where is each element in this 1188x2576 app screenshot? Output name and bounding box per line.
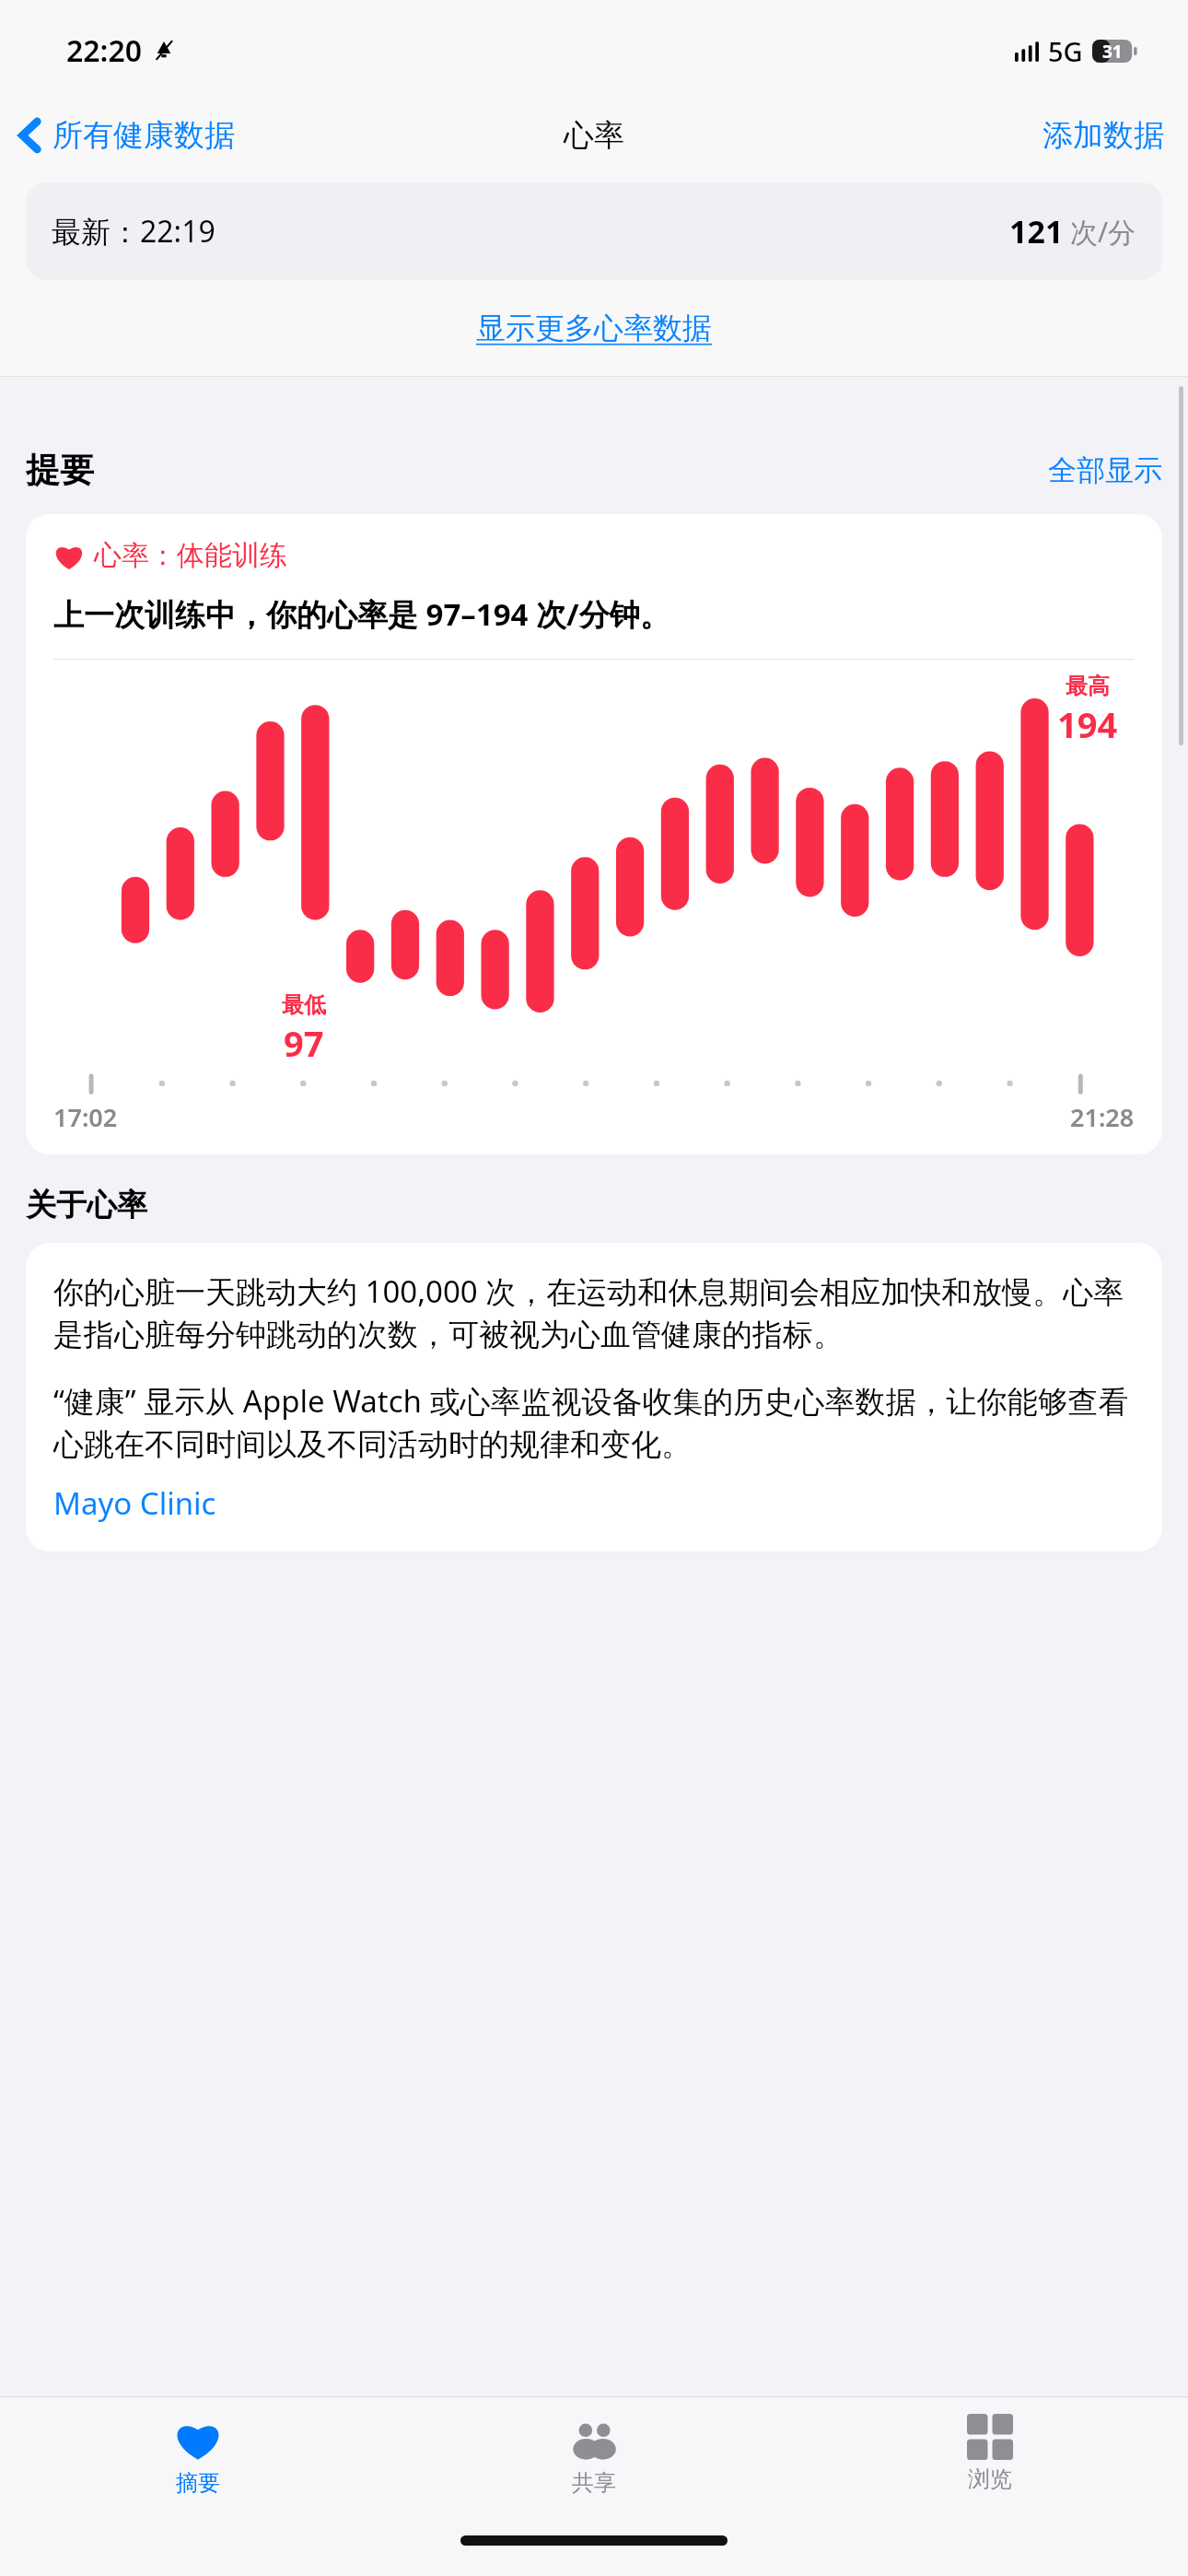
- staticText: 最低: [282, 991, 326, 1019]
- staticText: 关于心率: [26, 1186, 147, 1224]
- button[interactable]: Mayo Clinic: [53, 1482, 216, 1524]
- staticText: 次/分: [1070, 213, 1136, 251]
- staticText: “健康” 显示从 Apple Watch 或心率监视设备收集的历史心率数据，让你…: [53, 1380, 1135, 1464]
- button[interactable]: 显示更多心率数据: [0, 280, 1188, 376]
- staticText: 心率：体能训练: [94, 538, 287, 573]
- staticText: 心率: [564, 116, 624, 155]
- staticText: 最新：22:19: [52, 211, 215, 252]
- staticText: 你的心脏一天跳动大约 100,000 次，在运动和休息期间会相应加快和放慢。心率…: [53, 1270, 1135, 1354]
- staticText: 浏览: [968, 2465, 1012, 2493]
- button[interactable]: 最新：22:19: [26, 182, 1162, 280]
- staticText: 31: [1102, 40, 1123, 63]
- staticText: 最高: [1066, 673, 1110, 700]
- staticText: 所有健康数据: [52, 116, 235, 155]
- staticText: 121: [1009, 210, 1064, 252]
- button[interactable]: 浏览: [792, 2397, 1188, 2493]
- staticText: 21:28: [1070, 1100, 1135, 1134]
- staticText: 5G: [1048, 33, 1083, 69]
- staticText: 显示更多心率数据: [476, 310, 712, 346]
- staticText: 提要: [26, 449, 94, 492]
- staticText: 共享: [572, 2469, 616, 2497]
- staticText: 194: [1057, 700, 1118, 748]
- button[interactable]: 心率：体能训练: [26, 514, 1162, 1154]
- button[interactable]: 摘要: [0, 2397, 396, 2497]
- staticText: 22:20: [66, 30, 143, 71]
- staticText: 上一次训练中，你的心率是 97–194 次/分钟。: [53, 593, 670, 635]
- button[interactable]: 共享: [396, 2397, 792, 2497]
- staticText: 摘要: [176, 2469, 220, 2497]
- button[interactable]: 你的心脏一天跳动大约 100,000 次，在运动和休息期间会相应加快和放慢。心率…: [26, 1243, 1162, 1551]
- button[interactable]: 全部显示: [1048, 452, 1162, 488]
- staticText: 97: [284, 1019, 324, 1067]
- button[interactable]: 添加数据: [1019, 107, 1188, 164]
- staticText: 17:02: [53, 1100, 118, 1134]
- button[interactable]: 所有健康数据: [0, 109, 246, 162]
